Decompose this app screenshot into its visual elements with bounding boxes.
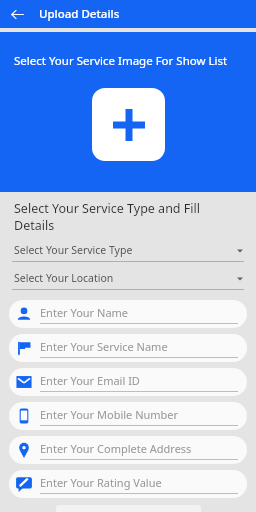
staticText: Upload Details bbox=[39, 6, 120, 22]
button[interactable]: Enter Your Rating Value bbox=[9, 470, 247, 498]
staticText: Select Your Location bbox=[14, 271, 237, 285]
staticText: Select Your Service Type and Fill Detail… bbox=[14, 200, 200, 233]
button[interactable]: Enter Your Name bbox=[9, 300, 247, 328]
staticText: Enter Your Email ID bbox=[40, 373, 140, 388]
button[interactable]: Enter Your Mobile Number bbox=[9, 402, 247, 430]
staticText: Select Your Service Image For Show List bbox=[14, 53, 228, 69]
staticText: Enter Your Rating Value bbox=[40, 475, 162, 490]
staticText: Enter Your Complete Address bbox=[40, 441, 192, 456]
button[interactable]: Enter Your Email ID bbox=[9, 368, 247, 396]
button[interactable]: Back bbox=[6, 3, 28, 25]
button[interactable]: Enter Your Service Name bbox=[9, 334, 247, 362]
button[interactable]: Select Your Location bbox=[12, 271, 244, 290]
staticText: Enter Your Service Name bbox=[40, 339, 168, 354]
staticText: Enter Your Mobile Number bbox=[40, 407, 179, 422]
button[interactable]: Enter Your Complete Address bbox=[9, 436, 247, 464]
button[interactable]: Add service image bbox=[92, 88, 165, 161]
staticText: Select Your Service Type bbox=[14, 243, 237, 257]
staticText: Enter Your Name bbox=[40, 305, 129, 320]
button[interactable]: Select Your Service Type bbox=[12, 243, 244, 262]
